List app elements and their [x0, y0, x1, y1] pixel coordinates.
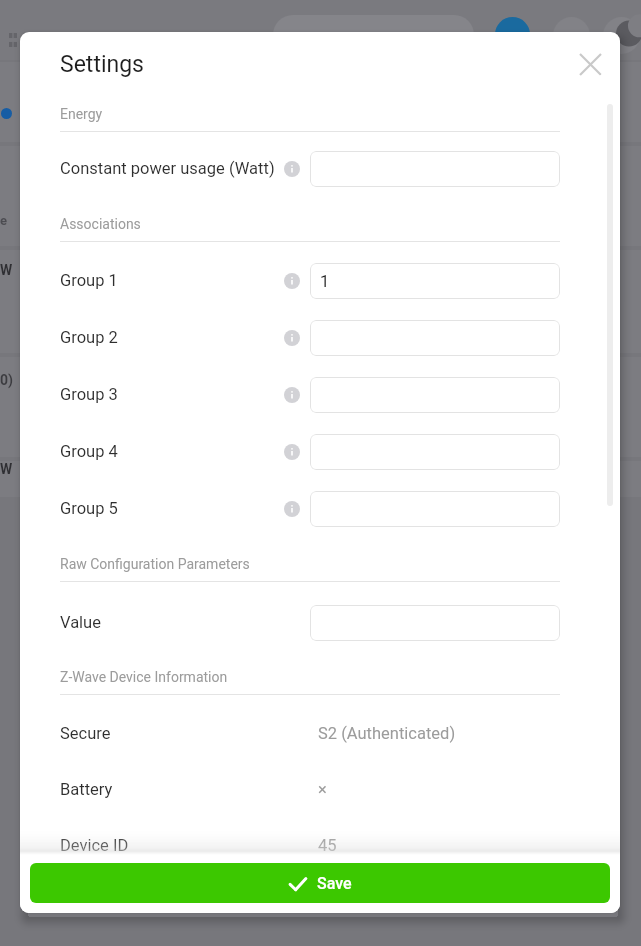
staticText: 1: [320, 272, 330, 291]
staticText: Group 1: [60, 271, 284, 290]
staticText: Settings: [60, 51, 144, 78]
staticText: Group 3: [60, 385, 284, 404]
staticText: Energy: [60, 106, 103, 122]
staticText: Device ID: [60, 836, 318, 855]
staticText: Save: [317, 874, 352, 893]
staticText: 45: [318, 836, 337, 855]
staticText: S2 (Authenticated): [318, 724, 456, 743]
button[interactable]: [310, 605, 560, 641]
staticText: Group 2: [60, 328, 284, 347]
button[interactable]: [310, 491, 560, 527]
staticText: Group 5: [60, 499, 284, 518]
staticText: Z-Wave Device Information: [60, 669, 228, 685]
staticText: Value: [60, 613, 284, 632]
staticText: Raw Configuration Parameters: [60, 556, 250, 572]
staticText: W: [0, 461, 13, 477]
button[interactable]: [310, 320, 560, 356]
button[interactable]: Close: [574, 50, 606, 78]
button[interactable]: Save: [30, 863, 610, 903]
button[interactable]: [310, 151, 560, 187]
staticText: 0): [0, 372, 13, 388]
staticText: Group 4: [60, 442, 284, 461]
staticText: e: [0, 213, 8, 228]
staticText: Battery: [60, 780, 318, 799]
staticText: Associations: [60, 216, 141, 232]
button[interactable]: 1: [310, 263, 560, 299]
button[interactable]: [310, 434, 560, 470]
staticText: W: [0, 262, 13, 278]
staticText: Secure: [60, 724, 318, 743]
button[interactable]: [310, 377, 560, 413]
staticText: Constant power usage (Watt): [60, 159, 284, 178]
staticText: ×: [318, 780, 327, 799]
